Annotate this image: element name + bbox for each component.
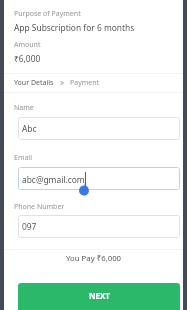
staticText: You Pay ₹6,000 [66, 253, 122, 264]
button[interactable]: NEXT [18, 283, 180, 310]
staticText: Phone Number [14, 202, 65, 212]
button[interactable]: abc@gmail.com [18, 167, 180, 190]
staticText: Purpose of Payment [14, 9, 81, 19]
button[interactable]: Your Details [14, 78, 54, 88]
button[interactable]: 097 [18, 215, 180, 238]
staticText: App Subscription for 6 months [14, 22, 135, 33]
staticText: NEXT [89, 290, 110, 301]
staticText: Abc [22, 123, 37, 134]
staticText: Email [14, 153, 32, 163]
staticText: ₹6,000 [14, 53, 41, 64]
button[interactable]: Payment [70, 78, 100, 88]
staticText: Name [14, 103, 34, 113]
button[interactable]: Abc [18, 117, 180, 140]
staticText: Amount [14, 40, 41, 50]
other: Text cursor handle [79, 183, 91, 197]
staticText: 097 [22, 221, 37, 232]
staticText: abc@gmail.com [22, 174, 85, 185]
